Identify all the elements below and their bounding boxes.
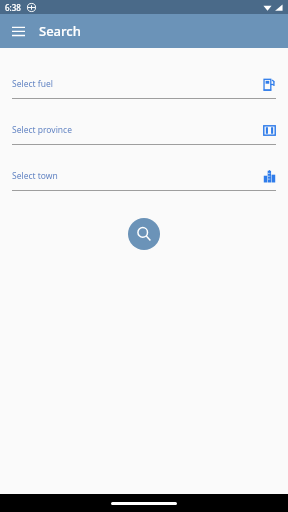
staticText: Search (39, 22, 81, 40)
button[interactable]: Select province (0, 116, 288, 162)
staticText: Select town (12, 170, 263, 182)
staticText: Select province (12, 124, 263, 136)
button[interactable]: Select town (0, 162, 288, 208)
button[interactable]: Open navigation menu (6, 19, 30, 43)
staticText: 6:38 (5, 2, 21, 13)
button[interactable]: Select fuel (0, 70, 288, 116)
button[interactable]: Search (128, 218, 160, 250)
staticText: Select fuel (12, 78, 263, 90)
